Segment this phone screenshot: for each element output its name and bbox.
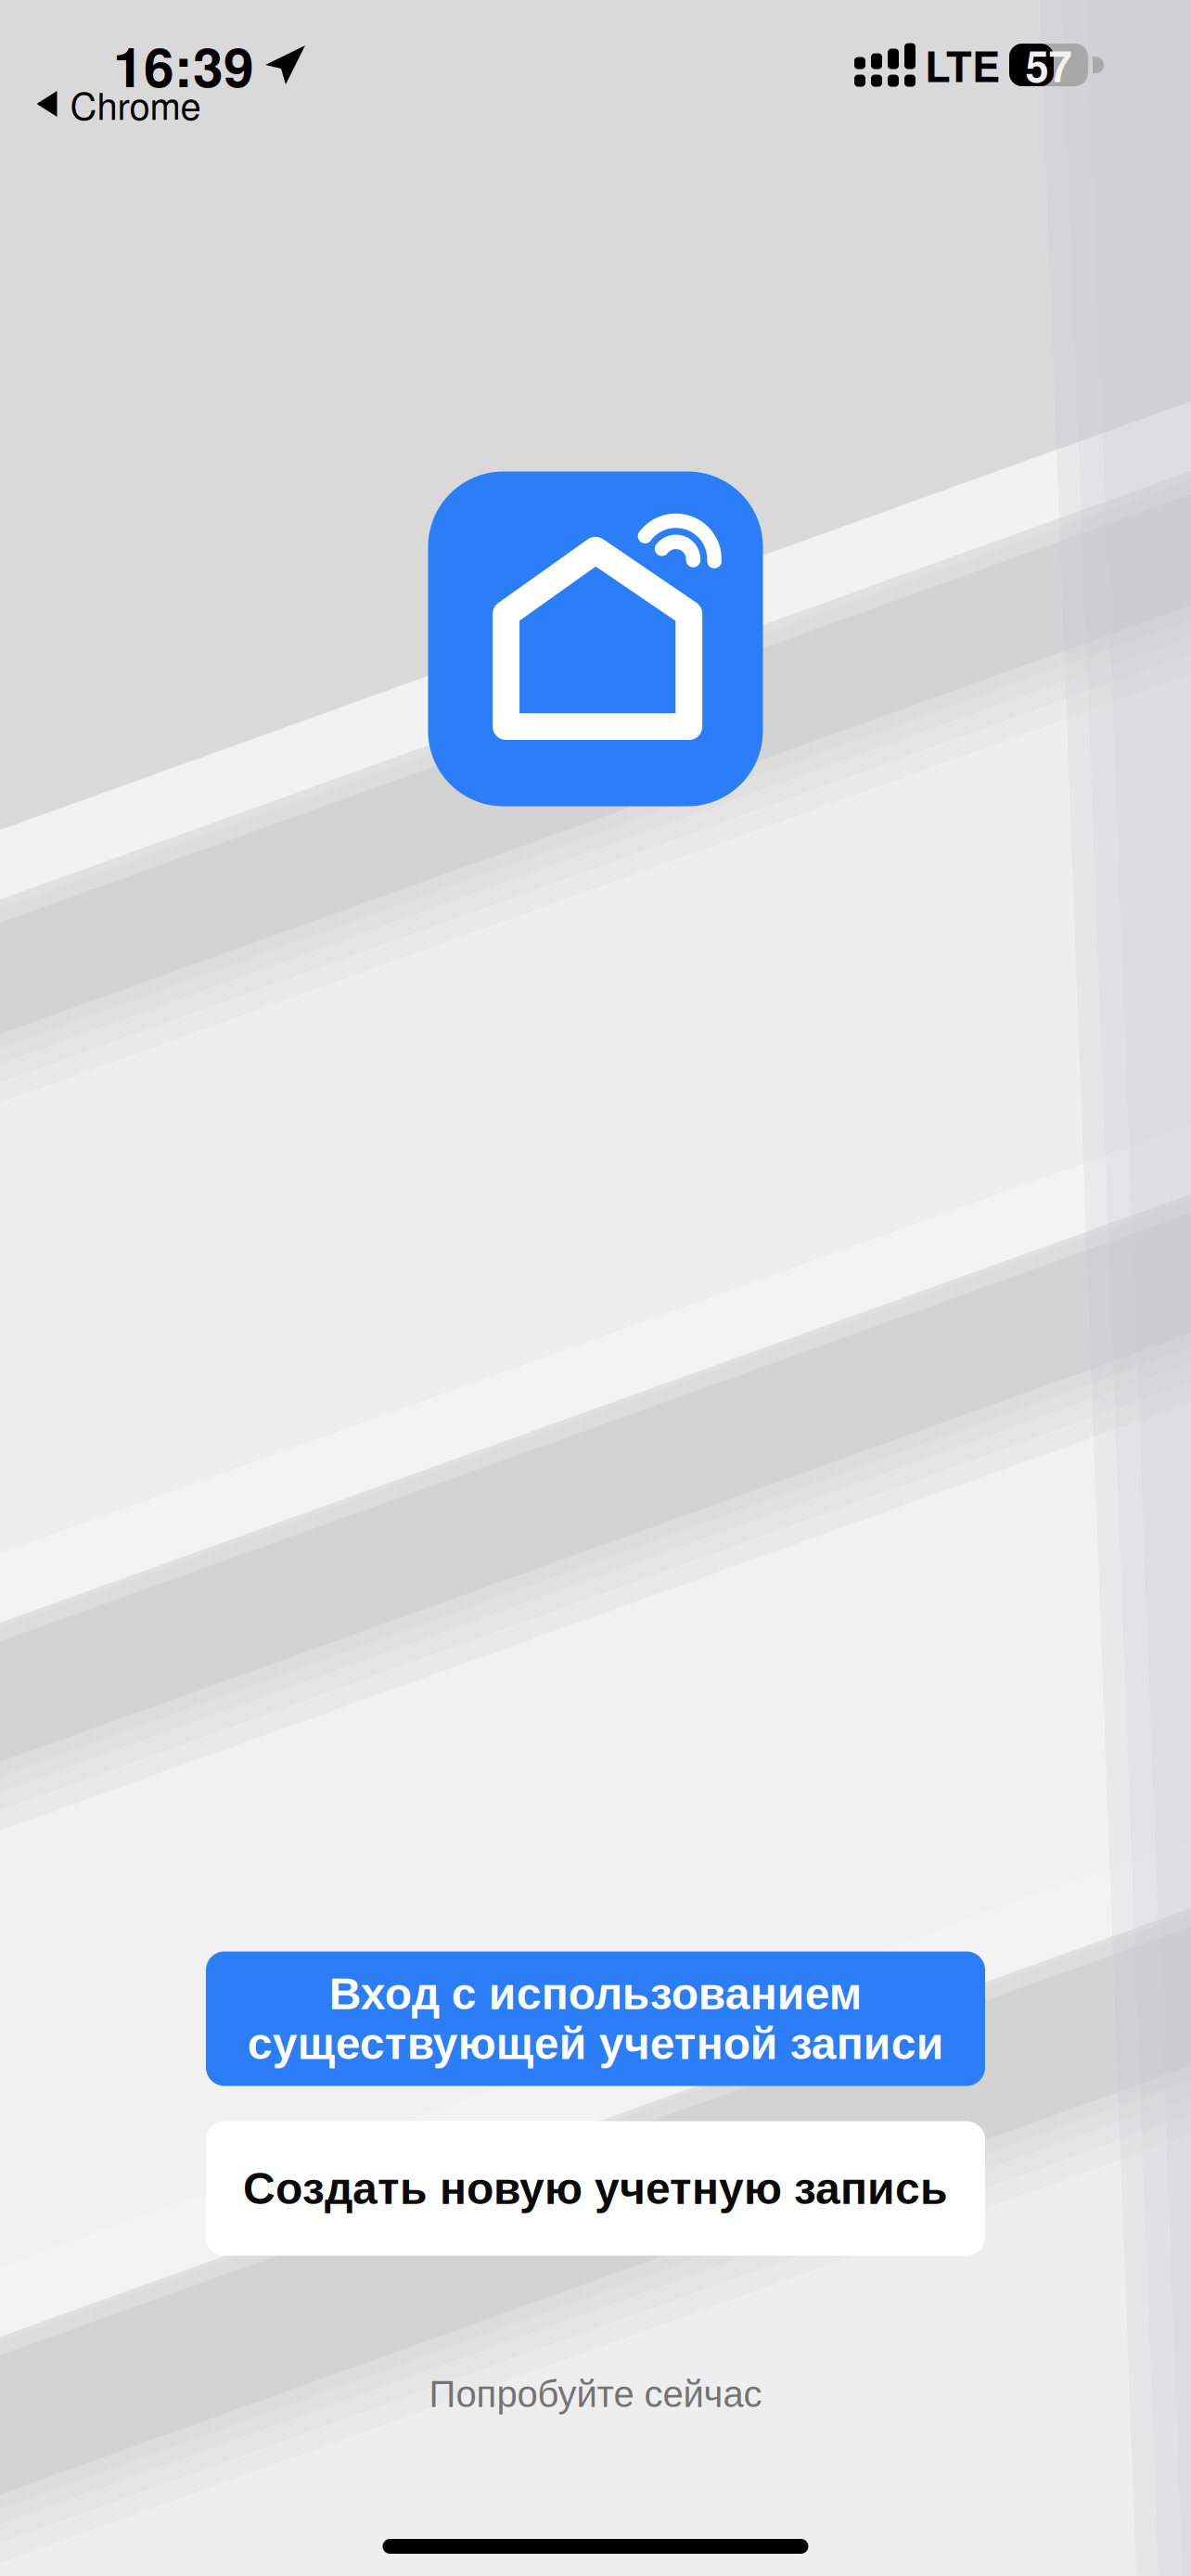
staticText: Попробуйте сейчас	[429, 2374, 762, 2415]
button[interactable]: Вход с использованием существующей учетн…	[206, 1951, 985, 2086]
button[interactable]: Создать новую учетную запись	[206, 2121, 985, 2256]
staticText: Вход с использованием существующей учетн…	[247, 1969, 944, 2068]
staticText: 57	[1025, 35, 1072, 95]
button[interactable]: Chrome	[24, 66, 214, 142]
staticText: LTE	[925, 35, 1000, 95]
staticText: Создать новую учетную запись	[243, 2164, 948, 2213]
staticText: 16:39	[113, 26, 254, 104]
staticText: Chrome	[70, 77, 201, 130]
button[interactable]: Попробуйте сейчас	[392, 2361, 799, 2428]
